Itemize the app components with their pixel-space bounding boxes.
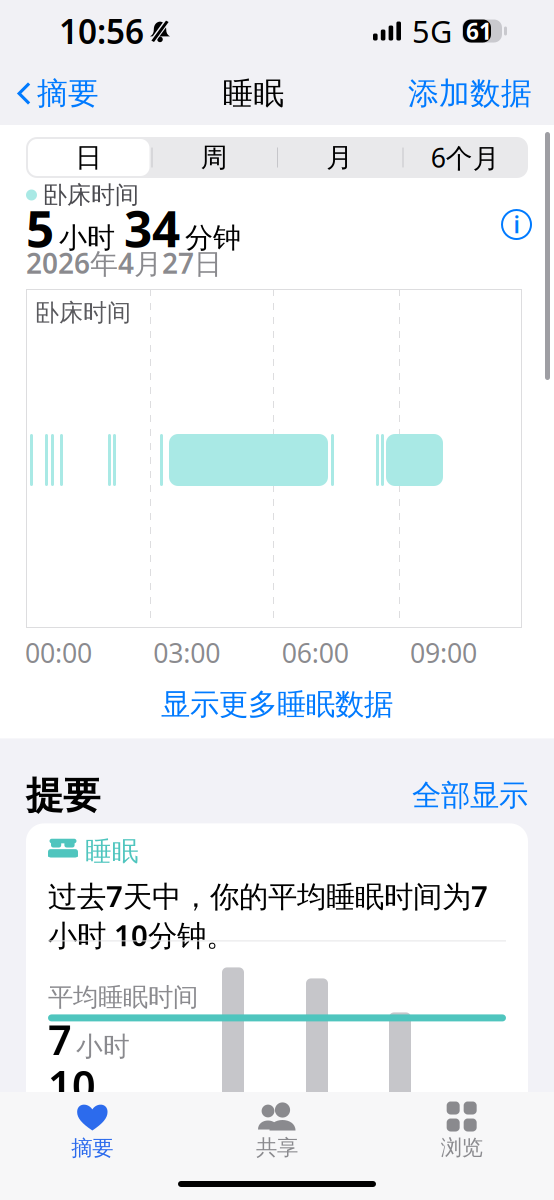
staticText: 周 <box>201 141 228 174</box>
button[interactable]: 周 <box>151 137 277 178</box>
staticText: 添加数据 <box>408 75 532 112</box>
button[interactable]: 浏览 <box>369 1092 554 1161</box>
staticText: 61 <box>466 16 492 46</box>
button[interactable]: 6个月 <box>402 137 528 178</box>
button[interactable]: 添加数据 <box>408 65 554 122</box>
staticText: 共享 <box>256 1134 298 1161</box>
staticText: 小时 <box>76 1030 130 1063</box>
staticText: 03:00 <box>153 635 220 670</box>
staticText: 显示更多睡眠数据 <box>161 686 393 722</box>
staticText: 卧床时间 <box>35 298 131 327</box>
staticText: 卧床时间 <box>43 180 139 210</box>
staticText: 06:00 <box>282 635 349 670</box>
staticText: 34 <box>124 195 180 261</box>
button[interactable]: 全部显示 <box>412 777 528 813</box>
staticText: 09:00 <box>410 635 477 670</box>
staticText: 10:56 <box>59 9 144 53</box>
staticText: i <box>513 209 519 239</box>
button[interactable]: 关于睡眠 <box>501 183 554 240</box>
button[interactable]: 显示更多睡眠数据 <box>0 670 554 738</box>
staticText: 提要 <box>26 773 100 818</box>
staticText: 7 <box>48 1012 72 1067</box>
staticText: 睡眠 <box>222 75 284 112</box>
staticText: 日 <box>75 141 102 174</box>
staticText: 5G <box>412 11 452 51</box>
staticText: 过去7天中，你的平均睡眠时间为7小时 10分钟。 <box>48 876 488 954</box>
staticText: 2026年4月27日 <box>26 244 222 282</box>
button[interactable]: 日 <box>26 137 151 178</box>
staticText: 00:00 <box>25 635 92 670</box>
staticText: 月 <box>326 141 353 174</box>
staticText: 摘要 <box>37 75 99 112</box>
staticText: 10 <box>48 1057 96 1112</box>
button[interactable]: 月 <box>277 137 402 178</box>
staticText: 5 <box>26 195 54 261</box>
staticText: 6个月 <box>431 140 500 175</box>
staticText: 分钟 <box>185 221 241 255</box>
staticText: 小时 <box>59 221 115 255</box>
staticText: 平均睡眠时间 <box>48 982 198 1013</box>
staticText: 全部显示 <box>412 777 528 813</box>
button[interactable]: 共享 <box>185 1092 369 1161</box>
staticText: 浏览 <box>441 1134 483 1161</box>
staticText: 睡眠 <box>85 835 139 868</box>
button[interactable]: 摘要 <box>0 65 99 122</box>
staticText: 摘要 <box>71 1135 113 1161</box>
button[interactable]: 摘要 <box>0 1092 185 1161</box>
